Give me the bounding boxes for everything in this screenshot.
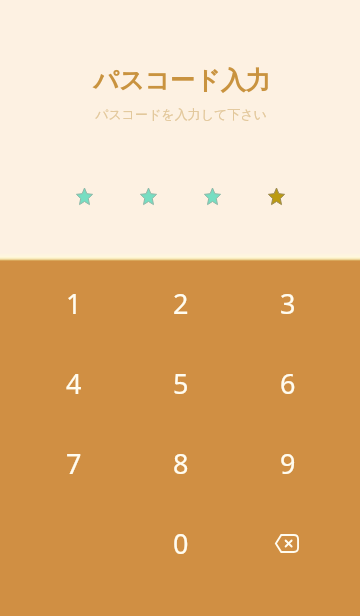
button[interactable]: 5: [127, 343, 234, 423]
staticText: 7: [66, 445, 82, 482]
staticText: 0: [173, 525, 189, 562]
staticText: パスコード入力: [93, 65, 271, 96]
button[interactable]: 4: [21, 343, 127, 423]
button[interactable]: 3: [234, 263, 341, 343]
button[interactable]: 7: [21, 423, 127, 503]
staticText: 2: [173, 285, 189, 322]
button[interactable]: 0: [127, 503, 234, 583]
button[interactable]: 6: [234, 343, 341, 423]
button[interactable]: 2: [127, 263, 234, 343]
staticText: 8: [173, 445, 189, 482]
button[interactable]: 8: [127, 423, 234, 503]
button[interactable]: Delete: [234, 503, 341, 583]
staticText: 6: [280, 365, 296, 402]
button[interactable]: 9: [234, 423, 341, 503]
staticText: 3: [280, 285, 296, 322]
staticText: 4: [66, 365, 82, 402]
staticText: 5: [173, 365, 189, 402]
staticText: パスコードを入力して下さい: [95, 106, 267, 122]
staticText: 1: [66, 285, 82, 322]
button[interactable]: 1: [21, 263, 127, 343]
staticText: 9: [280, 445, 296, 482]
